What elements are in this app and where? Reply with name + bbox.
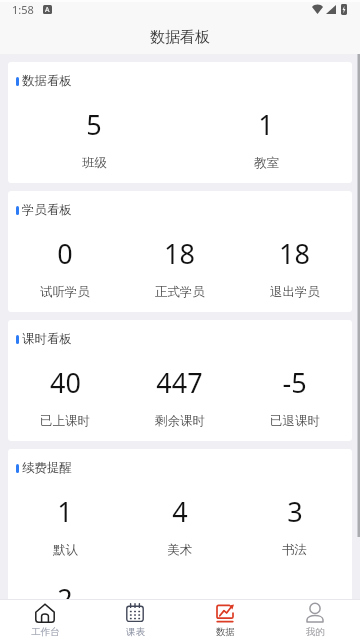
staticText: 默认: [53, 542, 78, 558]
staticText: 已上课时: [40, 413, 90, 429]
staticText: 18: [279, 235, 310, 272]
staticText: 1: [258, 106, 274, 143]
staticText: 数据: [216, 626, 235, 638]
staticText: 1:58: [12, 2, 34, 17]
staticText: 学员看板: [22, 202, 72, 218]
staticText: 5: [86, 106, 102, 143]
staticText: 教室: [254, 155, 279, 171]
staticText: 447: [156, 364, 203, 401]
staticText: 退出学员: [270, 284, 320, 300]
staticText: 书法: [282, 542, 307, 558]
staticText: 课表: [126, 626, 145, 638]
staticText: 正式学员: [155, 284, 205, 300]
button[interactable]: 工作台: [0, 600, 90, 641]
staticText: 续费提醒: [22, 460, 72, 476]
staticText: 试听学员: [40, 284, 90, 300]
staticText: 数据看板: [22, 73, 72, 89]
staticText: 18: [164, 235, 195, 272]
button[interactable]: 课时看板: [8, 320, 352, 441]
staticText: 4: [172, 493, 188, 530]
button[interactable]: 数据: [180, 600, 270, 641]
button[interactable]: 学员看板: [8, 191, 352, 312]
button[interactable]: 课表: [90, 600, 180, 641]
staticText: 工作台: [31, 626, 60, 638]
button[interactable]: 续费提醒: [8, 449, 352, 599]
staticText: 已退课时: [270, 413, 320, 429]
staticText: 我的: [306, 626, 325, 638]
staticText: 美术: [167, 542, 192, 558]
staticText: 1: [57, 493, 73, 530]
staticText: 3: [287, 493, 303, 530]
button[interactable]: 数据看板: [8, 62, 352, 183]
staticText: -5: [282, 364, 307, 401]
staticText: 数据看板: [150, 28, 210, 47]
staticText: 0: [57, 235, 73, 272]
button[interactable]: 我的: [270, 600, 360, 641]
staticText: 2: [57, 580, 73, 599]
staticText: 课时看板: [22, 331, 72, 347]
staticText: 剩余课时: [155, 413, 205, 429]
staticText: 班级: [82, 155, 107, 171]
staticText: 40: [50, 364, 81, 401]
staticText: A: [45, 5, 50, 14]
